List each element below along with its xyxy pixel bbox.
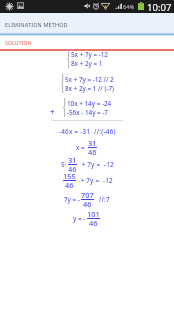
staticText: 101 (87, 209, 100, 219)
staticText: 5x + 7y = -12 // 2 (65, 75, 114, 84)
staticText: y = - (73, 214, 86, 223)
staticText: + (50, 106, 55, 117)
staticText: 46 (83, 199, 92, 209)
staticText: 155 (63, 171, 76, 181)
staticText: 31 (88, 138, 97, 148)
staticText: + 7y = -12 (78, 160, 114, 169)
staticText: 8x + 2y = 1 // (-7) (65, 84, 114, 93)
staticText: + 7y = -12 (77, 176, 113, 185)
staticText: 10x + 14y = -24 (67, 99, 112, 108)
staticText: ELIMINATION METHOD (5, 21, 68, 28)
staticText: 5x + 7y = -12 (71, 50, 108, 59)
staticText: 5· (61, 160, 67, 169)
staticText: 707 (81, 190, 94, 200)
staticText: 64% (123, 3, 135, 11)
staticText: SOLUTION (5, 40, 32, 47)
staticText: 8x + 2y = 1 (71, 59, 103, 68)
staticText: 31 (68, 155, 77, 165)
staticText: -56x - 14y = -7 (67, 108, 108, 117)
staticText: 46 (89, 218, 98, 228)
staticText: 10:07 (147, 1, 172, 14)
button[interactable]: ELIMINATION METHOD (0, 13, 174, 33)
staticText: x = (76, 143, 87, 152)
staticText: -46x = -31 //:(-46) (59, 127, 116, 136)
staticText: 46 (68, 164, 77, 174)
staticText: 7y = - (64, 195, 80, 204)
staticText: 46 (65, 180, 74, 190)
staticText: 46 (88, 147, 97, 157)
staticText: //:7 (95, 195, 110, 204)
